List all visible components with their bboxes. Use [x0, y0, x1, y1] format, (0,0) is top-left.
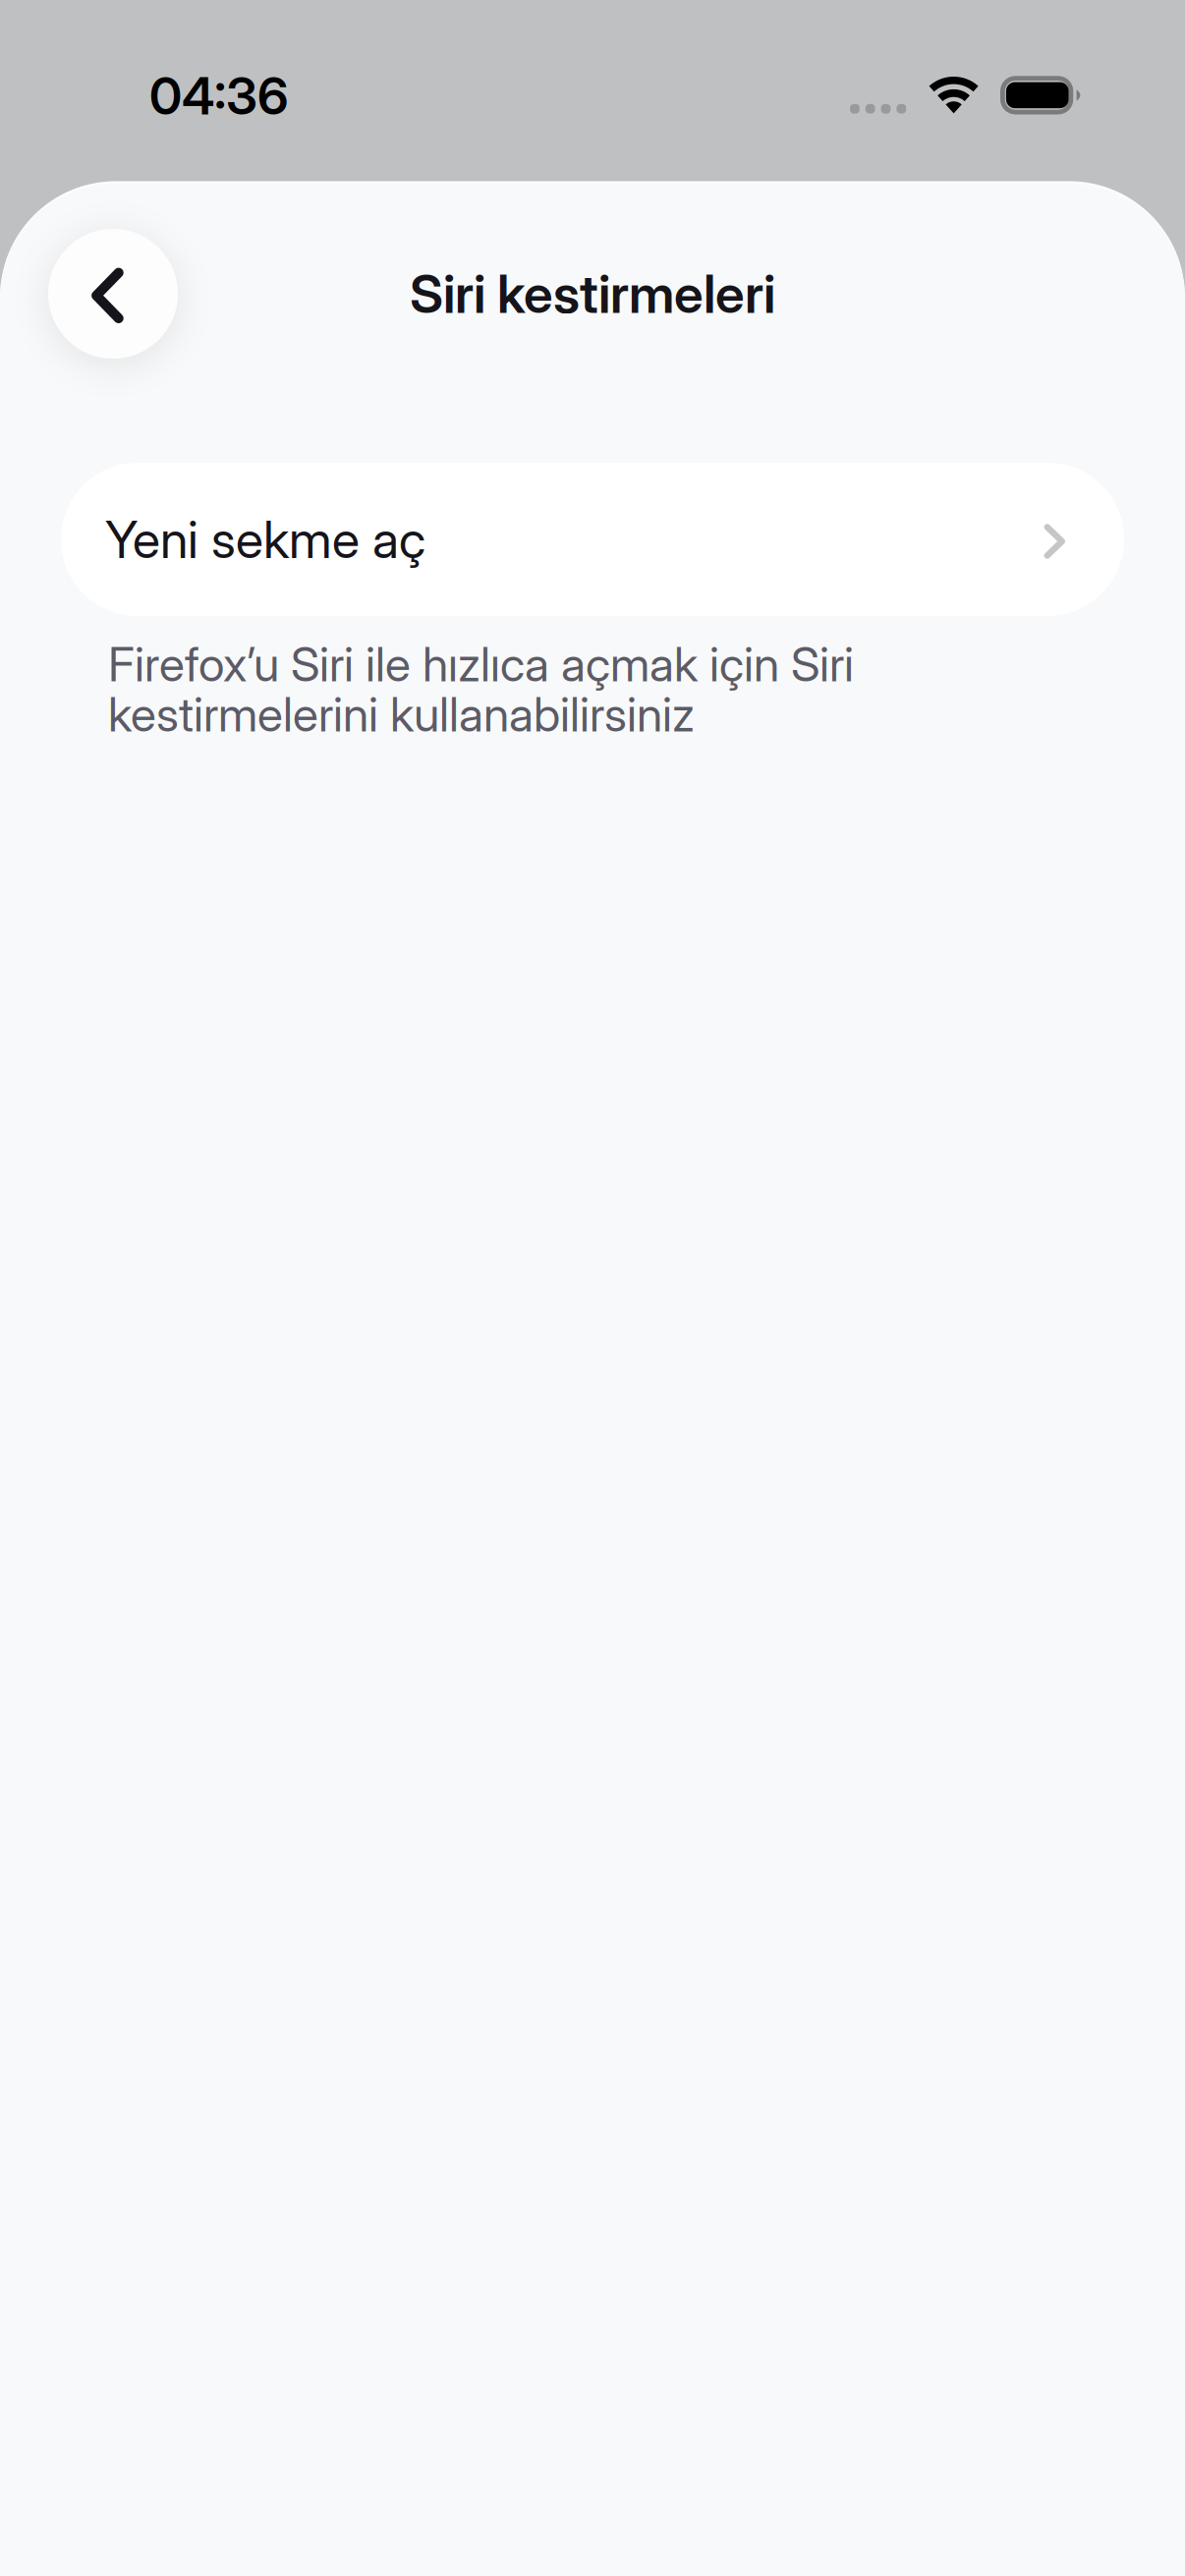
button[interactable]: Yeni sekme aç [61, 463, 1124, 616]
staticText: Firefox’u Siri ile hızlıca açmak için Si… [108, 636, 854, 743]
staticText: 04:36 [149, 65, 289, 127]
staticText: Yeni sekme aç [105, 508, 425, 570]
button[interactable]: Geri [48, 229, 178, 359]
staticText: Siri kestirmeleri [410, 262, 775, 325]
